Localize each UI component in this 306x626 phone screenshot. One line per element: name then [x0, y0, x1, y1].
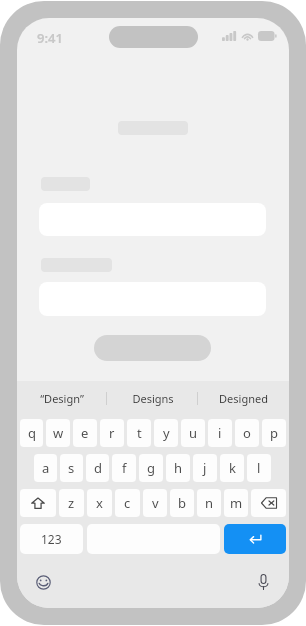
button[interactable]: w — [46, 419, 70, 447]
button[interactable]: p — [262, 419, 286, 447]
button[interactable]: 123 — [20, 524, 83, 554]
button[interactable]: Shift — [20, 489, 56, 517]
button[interactable]: q — [20, 419, 43, 447]
button[interactable]: x — [87, 489, 112, 517]
button[interactable]: Return — [224, 524, 286, 554]
staticText: Designed — [219, 391, 268, 406]
staticText: s — [68, 459, 75, 477]
staticText: u — [189, 424, 198, 442]
button[interactable]: k — [220, 454, 244, 482]
button[interactable]: d — [86, 454, 109, 482]
button[interactable]: y — [154, 419, 178, 447]
staticText: v — [152, 494, 159, 512]
staticText: b — [178, 494, 186, 512]
staticText: Designs — [132, 391, 174, 406]
button[interactable]: Backspace — [251, 489, 286, 517]
button[interactable]: t — [127, 419, 151, 447]
staticText: c — [124, 494, 131, 512]
button[interactable]: z — [59, 489, 84, 517]
staticText: j — [203, 459, 207, 477]
staticText: w — [53, 424, 64, 442]
staticText: “Design” — [40, 391, 84, 406]
button[interactable]: h — [166, 454, 190, 482]
button[interactable]: v — [143, 489, 167, 517]
button[interactable]: g — [139, 454, 163, 482]
staticText: g — [147, 459, 155, 477]
staticText: i — [218, 424, 222, 442]
staticText: o — [243, 424, 251, 442]
button[interactable]: “Design” — [17, 381, 107, 415]
staticText: f — [122, 459, 127, 477]
staticText: l — [257, 459, 261, 477]
staticText: q — [28, 424, 36, 442]
staticText: k — [229, 459, 236, 477]
button[interactable]: j — [193, 454, 217, 482]
button[interactable]: e — [73, 419, 97, 447]
button[interactable]: Voice input — [251, 570, 275, 594]
button[interactable]: u — [181, 419, 205, 447]
staticText: n — [205, 494, 214, 512]
button[interactable]: i — [208, 419, 232, 447]
button[interactable]: a — [34, 454, 57, 482]
button[interactable]: f — [112, 454, 136, 482]
staticText: x — [96, 494, 103, 512]
button[interactable]: n — [197, 489, 221, 517]
staticText: t — [137, 424, 142, 442]
button[interactable]: m — [224, 489, 248, 517]
staticText: h — [174, 459, 183, 477]
staticText: 123 — [41, 531, 62, 547]
button[interactable]: Designed — [198, 381, 289, 415]
button[interactable]: o — [235, 419, 259, 447]
button[interactable] — [94, 335, 211, 361]
staticText: m — [230, 494, 243, 512]
staticText: 9:41 — [37, 29, 63, 47]
staticText: r — [109, 424, 115, 442]
button[interactable]: c — [115, 489, 140, 517]
button[interactable]: s — [60, 454, 83, 482]
staticText: e — [81, 424, 89, 442]
staticText: p — [270, 424, 278, 442]
button[interactable]: l — [247, 454, 271, 482]
button[interactable]: Emoji — [31, 570, 55, 594]
button[interactable]: b — [170, 489, 194, 517]
button[interactable]: Designs — [107, 381, 198, 415]
staticText: z — [68, 494, 75, 512]
staticText: a — [42, 459, 50, 477]
staticText: d — [94, 459, 102, 477]
staticText: y — [163, 424, 170, 442]
button[interactable]: r — [100, 419, 124, 447]
